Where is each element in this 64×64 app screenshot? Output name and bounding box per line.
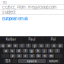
staticText: i: [47, 44, 48, 48]
button[interactable]: a: [3, 49, 9, 53]
staticText: l: [57, 49, 58, 53]
staticText: f: [25, 49, 26, 53]
staticText: European email: [2, 16, 28, 21]
button[interactable]: s: [10, 49, 15, 53]
button[interactable]: o: [51, 44, 57, 48]
staticText: k: [50, 49, 52, 53]
button[interactable]: e: [13, 44, 18, 48]
staticText: Subject:: [2, 10, 16, 15]
staticText: d: [18, 49, 20, 53]
button[interactable]: b: [36, 54, 41, 58]
staticText: t: [28, 44, 29, 48]
staticText: return: [49, 59, 58, 63]
button[interactable]: u: [38, 44, 44, 48]
button[interactable]: v: [29, 54, 35, 58]
staticText: Cc/Bcc, From: me@icloud.com: [2, 5, 57, 10]
button[interactable]: d: [16, 49, 21, 53]
button[interactable]: return: [47, 59, 60, 63]
staticText: 123: [5, 59, 10, 63]
staticText: n: [44, 54, 46, 58]
staticText: Kalber: [6, 37, 16, 41]
button[interactable]: z: [10, 54, 15, 58]
button[interactable]: j: [42, 49, 47, 53]
button[interactable]: Kalber: [0, 36, 21, 43]
staticText: b: [37, 54, 39, 58]
staticText: e: [15, 44, 17, 48]
staticText: To:: [2, 0, 7, 5]
staticText: j: [44, 49, 45, 53]
button[interactable]: p: [58, 44, 63, 48]
staticText: v: [31, 54, 33, 58]
button[interactable]: To:: [0, 0, 64, 5]
button[interactable]: h: [35, 49, 41, 53]
button[interactable]: g: [29, 49, 34, 53]
staticText: y: [34, 44, 36, 48]
staticText: Pal: [51, 37, 56, 41]
button[interactable]: c: [23, 54, 28, 58]
button[interactable]: Paul: [21, 36, 42, 43]
button[interactable]: Pal: [43, 36, 64, 43]
button[interactable]: k: [48, 49, 53, 53]
staticText: w: [8, 44, 11, 48]
staticText: h: [37, 49, 39, 53]
button[interactable]: w: [6, 44, 12, 48]
button[interactable]: x: [16, 54, 22, 58]
button[interactable]: f: [22, 49, 28, 53]
button[interactable]: i: [45, 44, 50, 48]
staticText: Paul: [28, 37, 35, 41]
staticText: space: [27, 59, 37, 63]
button[interactable]: Cc/Bcc, From: me@icloud.com: [0, 5, 64, 10]
staticText: s: [11, 49, 13, 53]
button[interactable]: 123: [4, 59, 11, 63]
button[interactable]: l: [54, 49, 60, 53]
staticText: p: [59, 44, 61, 48]
staticText: a: [5, 49, 7, 53]
button[interactable]: m: [48, 54, 54, 58]
staticText: o: [53, 44, 55, 48]
button[interactable]: r: [19, 44, 25, 48]
button[interactable]: q: [0, 44, 5, 48]
button[interactable]: Subject:: [0, 10, 64, 15]
button[interactable]: y: [32, 44, 37, 48]
staticText: c: [25, 54, 27, 58]
button[interactable]: space: [18, 59, 46, 63]
staticText: x: [18, 54, 20, 58]
staticText: q: [2, 44, 4, 48]
button[interactable]: n: [42, 54, 47, 58]
staticText: u: [40, 44, 42, 48]
staticText: g: [31, 49, 33, 53]
staticText: m: [50, 54, 53, 58]
staticText: z: [12, 54, 14, 58]
button[interactable]: t: [26, 44, 31, 48]
